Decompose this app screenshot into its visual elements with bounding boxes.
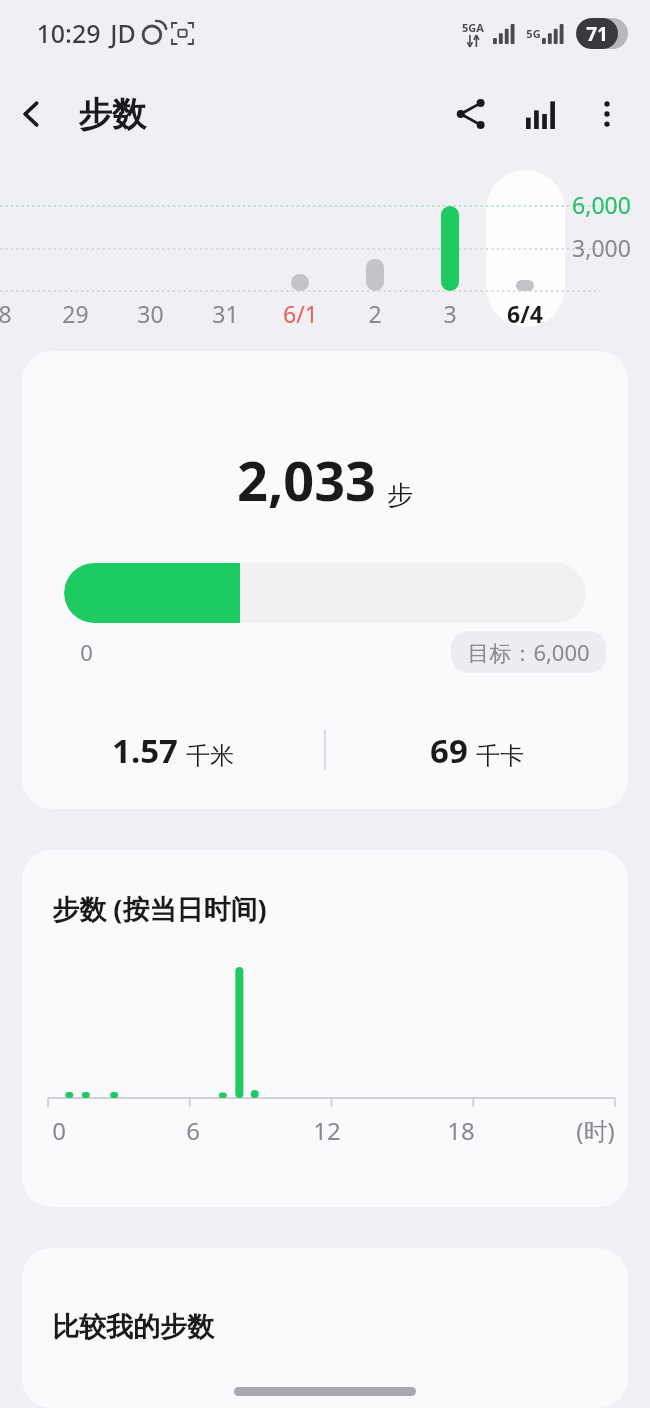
button[interactable]: 步数 (按当日时间) [22,850,628,1207]
staticText: 6/4 [507,298,543,329]
staticText: 31 [212,298,239,329]
staticText: 千卡 [476,741,524,771]
staticText: 10:29 [36,16,101,50]
staticText: 步数 [78,93,146,136]
button[interactable]: Back [0,82,64,146]
staticText: 6 [186,1114,200,1147]
staticText: 5G [526,26,541,41]
staticText: 目标：6,000 [467,637,590,667]
staticText: 29 [62,298,89,329]
staticText: 12 [313,1114,341,1147]
staticText: 步数 (按当日时间) [52,890,267,927]
staticText: 30 [137,298,164,329]
staticText: 3,000 [572,232,631,263]
button[interactable]: Chart [510,83,572,145]
staticText: 2,033 [237,443,376,517]
staticText: 1.57 [112,728,178,773]
staticText: (时) [576,1114,615,1147]
staticText: 18 [447,1114,475,1147]
staticText: JD [110,16,136,50]
button[interactable]: More options [578,85,636,143]
staticText: 2 [368,298,382,329]
staticText: 比较我的步数 [52,1310,214,1344]
staticText: 3 [443,298,457,329]
staticText: 6,000 [572,189,631,220]
button[interactable] [486,170,565,327]
staticText: 6/1 [283,298,318,329]
staticText: 8 [0,298,12,329]
staticText: 步 [387,479,413,512]
staticText: 69 [430,728,468,773]
button[interactable]: Share [440,83,502,145]
staticText: 0 [80,637,93,667]
button[interactable]: 比较我的步数 [22,1248,628,1408]
staticText: 5GA [462,20,484,35]
staticText: 千米 [186,741,234,771]
staticText: 71 [586,21,608,47]
button[interactable]: 2,033 [22,351,628,809]
staticText: 0 [52,1114,66,1147]
